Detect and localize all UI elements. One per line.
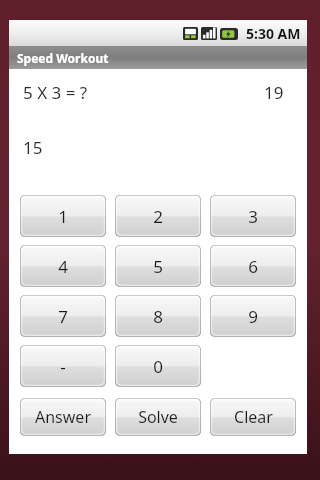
staticText: 8 bbox=[153, 305, 163, 328]
staticText: 4 bbox=[58, 255, 68, 278]
staticText: 0 bbox=[153, 355, 163, 378]
staticText: 5 X 3 = ? bbox=[23, 81, 88, 104]
staticText: 7 bbox=[58, 305, 68, 328]
button[interactable]: 0 bbox=[115, 345, 201, 387]
button[interactable]: 2 bbox=[115, 195, 201, 237]
button[interactable]: 3 bbox=[210, 195, 296, 237]
staticText: Answer bbox=[35, 406, 91, 428]
staticText: 6 bbox=[248, 255, 258, 278]
button[interactable]: 6 bbox=[210, 245, 296, 287]
button[interactable]: 4 bbox=[20, 245, 106, 287]
staticText: 5:30 AM bbox=[246, 24, 301, 43]
staticText: 2 bbox=[153, 205, 163, 228]
button[interactable]: 7 bbox=[20, 295, 106, 337]
button[interactable]: Solve bbox=[115, 398, 201, 436]
button[interactable]: - bbox=[20, 345, 106, 387]
staticText: 5 bbox=[153, 255, 163, 278]
button[interactable]: 9 bbox=[210, 295, 296, 337]
button[interactable]: 5 bbox=[115, 245, 201, 287]
staticText: 1 bbox=[58, 205, 68, 228]
staticText: Clear bbox=[234, 406, 273, 428]
staticText: 9 bbox=[248, 305, 258, 328]
staticText: 19 bbox=[264, 81, 284, 104]
staticText: 15 bbox=[23, 136, 43, 159]
staticText: Speed Workout bbox=[17, 50, 109, 66]
button[interactable]: 8 bbox=[115, 295, 201, 337]
staticText: Solve bbox=[138, 406, 178, 428]
button[interactable]: Clear bbox=[210, 398, 296, 436]
button[interactable]: 1 bbox=[20, 195, 106, 237]
staticText: 3 bbox=[248, 205, 258, 228]
button[interactable]: Answer bbox=[20, 398, 106, 436]
staticText: - bbox=[60, 355, 66, 378]
